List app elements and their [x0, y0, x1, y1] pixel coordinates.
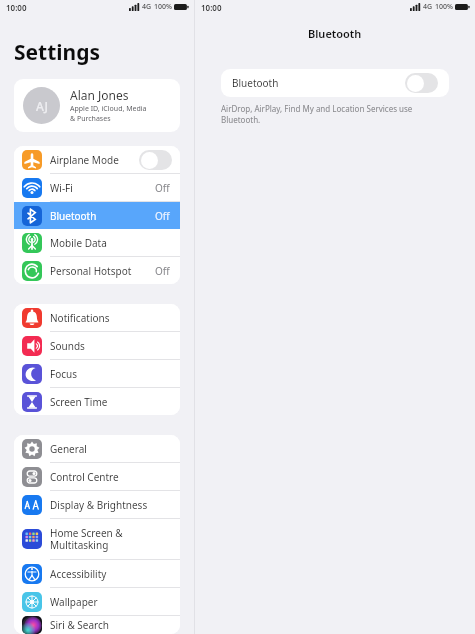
staticText: Apple ID, iCloud, Media	[70, 104, 147, 114]
button[interactable]: Siri & Search	[14, 616, 180, 634]
button[interactable]: Focus	[14, 360, 180, 388]
staticText: 4G	[142, 2, 152, 12]
staticText: Bluetooth	[232, 76, 279, 90]
staticText: Siri & Search	[50, 618, 109, 632]
staticText: Control Centre	[50, 470, 119, 484]
staticText: Focus	[50, 367, 78, 381]
staticText: Wi-Fi	[50, 181, 73, 195]
button[interactable]: Screen Time	[14, 388, 180, 415]
staticText: AirDrop, AirPlay, Find My and Location S…	[221, 103, 413, 114]
staticText: 4G	[423, 2, 433, 12]
staticText: Notifications	[50, 311, 110, 325]
staticText: Off	[155, 209, 170, 223]
staticText: Personal Hotspot	[50, 264, 132, 278]
staticText: Accessibility	[50, 567, 107, 581]
staticText: Bluetooth.	[221, 114, 261, 125]
staticText: Settings	[14, 38, 101, 67]
button[interactable]: AJ	[14, 79, 180, 132]
staticText: Sounds	[50, 339, 85, 353]
button[interactable]: Home Screen & Multitasking	[14, 519, 180, 560]
staticText: Airplane Mode	[50, 153, 119, 167]
button[interactable]: Mobile Data	[14, 229, 180, 257]
button[interactable]: Wi-Fi	[14, 174, 180, 202]
staticText: Display & Brightness	[50, 498, 148, 512]
button[interactable]: Airplane Mode	[14, 146, 180, 174]
staticText: Bluetooth	[308, 26, 362, 41]
staticText: Off	[155, 181, 170, 195]
staticText: Bluetooth	[50, 209, 97, 223]
staticText: Mobile Data	[50, 236, 107, 250]
staticText: Wallpaper	[50, 595, 98, 609]
staticText: General	[50, 442, 87, 456]
button[interactable]: Control Centre	[14, 463, 180, 491]
button[interactable]: Personal Hotspot	[14, 257, 180, 284]
staticText: 100%	[154, 2, 172, 12]
staticText: Alan Jones	[70, 87, 129, 103]
staticText: Home Screen & Multitasking	[50, 526, 123, 552]
staticText: 10:00	[6, 2, 27, 13]
button[interactable]: Airplane Mode toggle	[139, 150, 172, 170]
staticText: 10:00	[201, 2, 222, 13]
staticText: AJ	[36, 98, 48, 114]
button[interactable]: Sounds	[14, 332, 180, 360]
button[interactable]: Bluetooth	[221, 69, 449, 97]
staticText: 100%	[435, 2, 453, 12]
button[interactable]: General	[14, 435, 180, 463]
button[interactable]: Display & Brightness	[14, 491, 180, 519]
button[interactable]: Bluetooth toggle	[405, 73, 438, 93]
button[interactable]: Accessibility	[14, 560, 180, 588]
staticText: Off	[155, 264, 170, 278]
button[interactable]: Notifications	[14, 304, 180, 332]
staticText: & Purchases	[70, 114, 111, 124]
button[interactable]: Bluetooth	[14, 202, 180, 229]
staticText: Screen Time	[50, 395, 108, 409]
button[interactable]: Wallpaper	[14, 588, 180, 616]
